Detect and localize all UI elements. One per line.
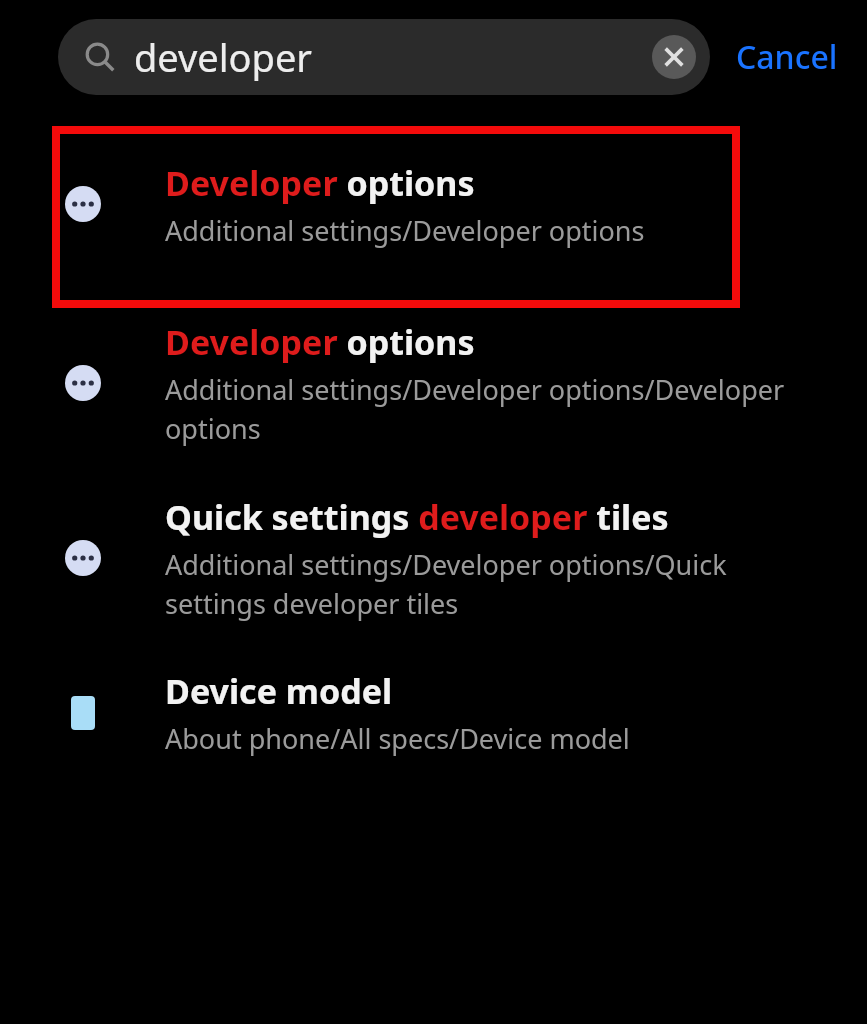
staticText: Cancel [736, 35, 838, 79]
button[interactable]: Cancel [736, 35, 838, 79]
button[interactable]: Developer options [0, 113, 867, 295]
staticText: About phone/All specs/Device model [165, 720, 630, 757]
staticText: Additional settings/Developer options [165, 212, 645, 249]
staticText: Developer options [165, 160, 475, 206]
staticText: Developer options [165, 319, 475, 365]
staticText: Quick settings developer tiles [165, 494, 669, 540]
button[interactable]: Quick settings developer tiles [0, 470, 867, 645]
button[interactable]: Clear search [646, 29, 702, 85]
staticText: Additional settings/Developer options/De… [165, 371, 807, 447]
button[interactable]: developer [58, 19, 710, 95]
staticText: developer [134, 31, 646, 83]
staticText: Device model [165, 668, 393, 714]
staticText: Additional settings/Developer options/Qu… [165, 546, 807, 622]
button[interactable]: Developer options [0, 295, 867, 470]
button[interactable]: Device model [0, 645, 867, 780]
